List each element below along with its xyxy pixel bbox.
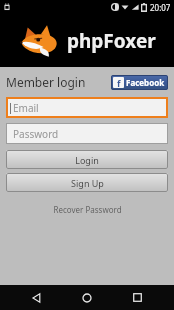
staticText: Sign Up bbox=[71, 177, 104, 189]
button[interactable]: Login bbox=[6, 150, 168, 169]
staticText: phpFoxer bbox=[67, 28, 156, 54]
button[interactable]: Recover Password bbox=[6, 201, 168, 217]
button[interactable]: Password bbox=[6, 123, 168, 144]
staticText: Login bbox=[75, 154, 99, 166]
button[interactable]: Back bbox=[24, 285, 50, 310]
staticText: Facebook bbox=[126, 77, 165, 88]
staticText: 20:07 bbox=[150, 2, 171, 13]
button[interactable]: Home bbox=[74, 285, 100, 310]
button[interactable]: f bbox=[111, 75, 168, 90]
staticText: Member login bbox=[6, 74, 86, 90]
button[interactable]: Sign Up bbox=[6, 173, 168, 192]
staticText: Password bbox=[13, 127, 59, 141]
button[interactable]: Recent apps bbox=[124, 285, 150, 310]
staticText: Email bbox=[13, 101, 39, 115]
staticText: f bbox=[117, 77, 121, 88]
staticText: Recover Password bbox=[53, 204, 122, 215]
other: phpFoxer logo bbox=[18, 24, 62, 58]
button[interactable]: Email bbox=[6, 97, 168, 118]
